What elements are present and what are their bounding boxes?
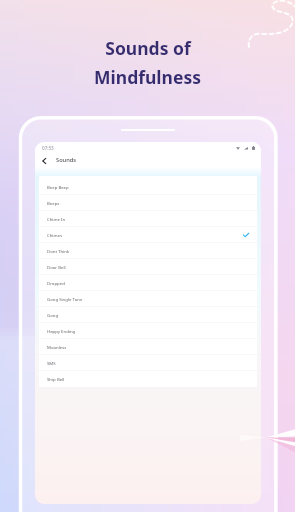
button[interactable]: Gong [39, 307, 257, 323]
button[interactable]: Moonless [39, 339, 257, 355]
button[interactable]: Chime In [39, 211, 257, 227]
staticText: Sounds of [105, 36, 191, 60]
staticText: Beeps [47, 200, 60, 206]
button[interactable]: Gong Single Tone [39, 291, 257, 307]
staticText: Mindfulness [94, 65, 201, 89]
button[interactable]: Door Bell [39, 259, 257, 275]
button[interactable]: Back [38, 155, 49, 166]
button[interactable]: SMS [39, 355, 257, 371]
staticText: Gong [47, 312, 59, 318]
button[interactable]: Beeps [39, 195, 257, 211]
staticText: Moonless [47, 344, 67, 350]
staticText: Dont Think [47, 248, 70, 254]
staticText: 07:53 [42, 145, 54, 151]
button[interactable]: Beep Beep [39, 179, 257, 195]
staticText: Dropped [47, 280, 65, 286]
button[interactable]: Dropped [39, 275, 257, 291]
staticText: Ship Bell [47, 376, 65, 382]
button[interactable]: Happy Ending [39, 323, 257, 339]
staticText: Beep Beep [47, 184, 69, 190]
staticText: Chime In [47, 216, 66, 222]
button[interactable]: Dont Think [39, 243, 257, 259]
staticText: Chimes [47, 232, 62, 238]
button[interactable]: Chimes [39, 227, 257, 243]
staticText: Door Bell [47, 264, 66, 270]
staticText: Gong Single Tone [47, 296, 83, 302]
staticText: Happy Ending [47, 328, 76, 334]
button[interactable]: Ship Bell [39, 371, 257, 387]
staticText: Sounds [56, 156, 77, 164]
staticText: SMS [47, 360, 56, 366]
